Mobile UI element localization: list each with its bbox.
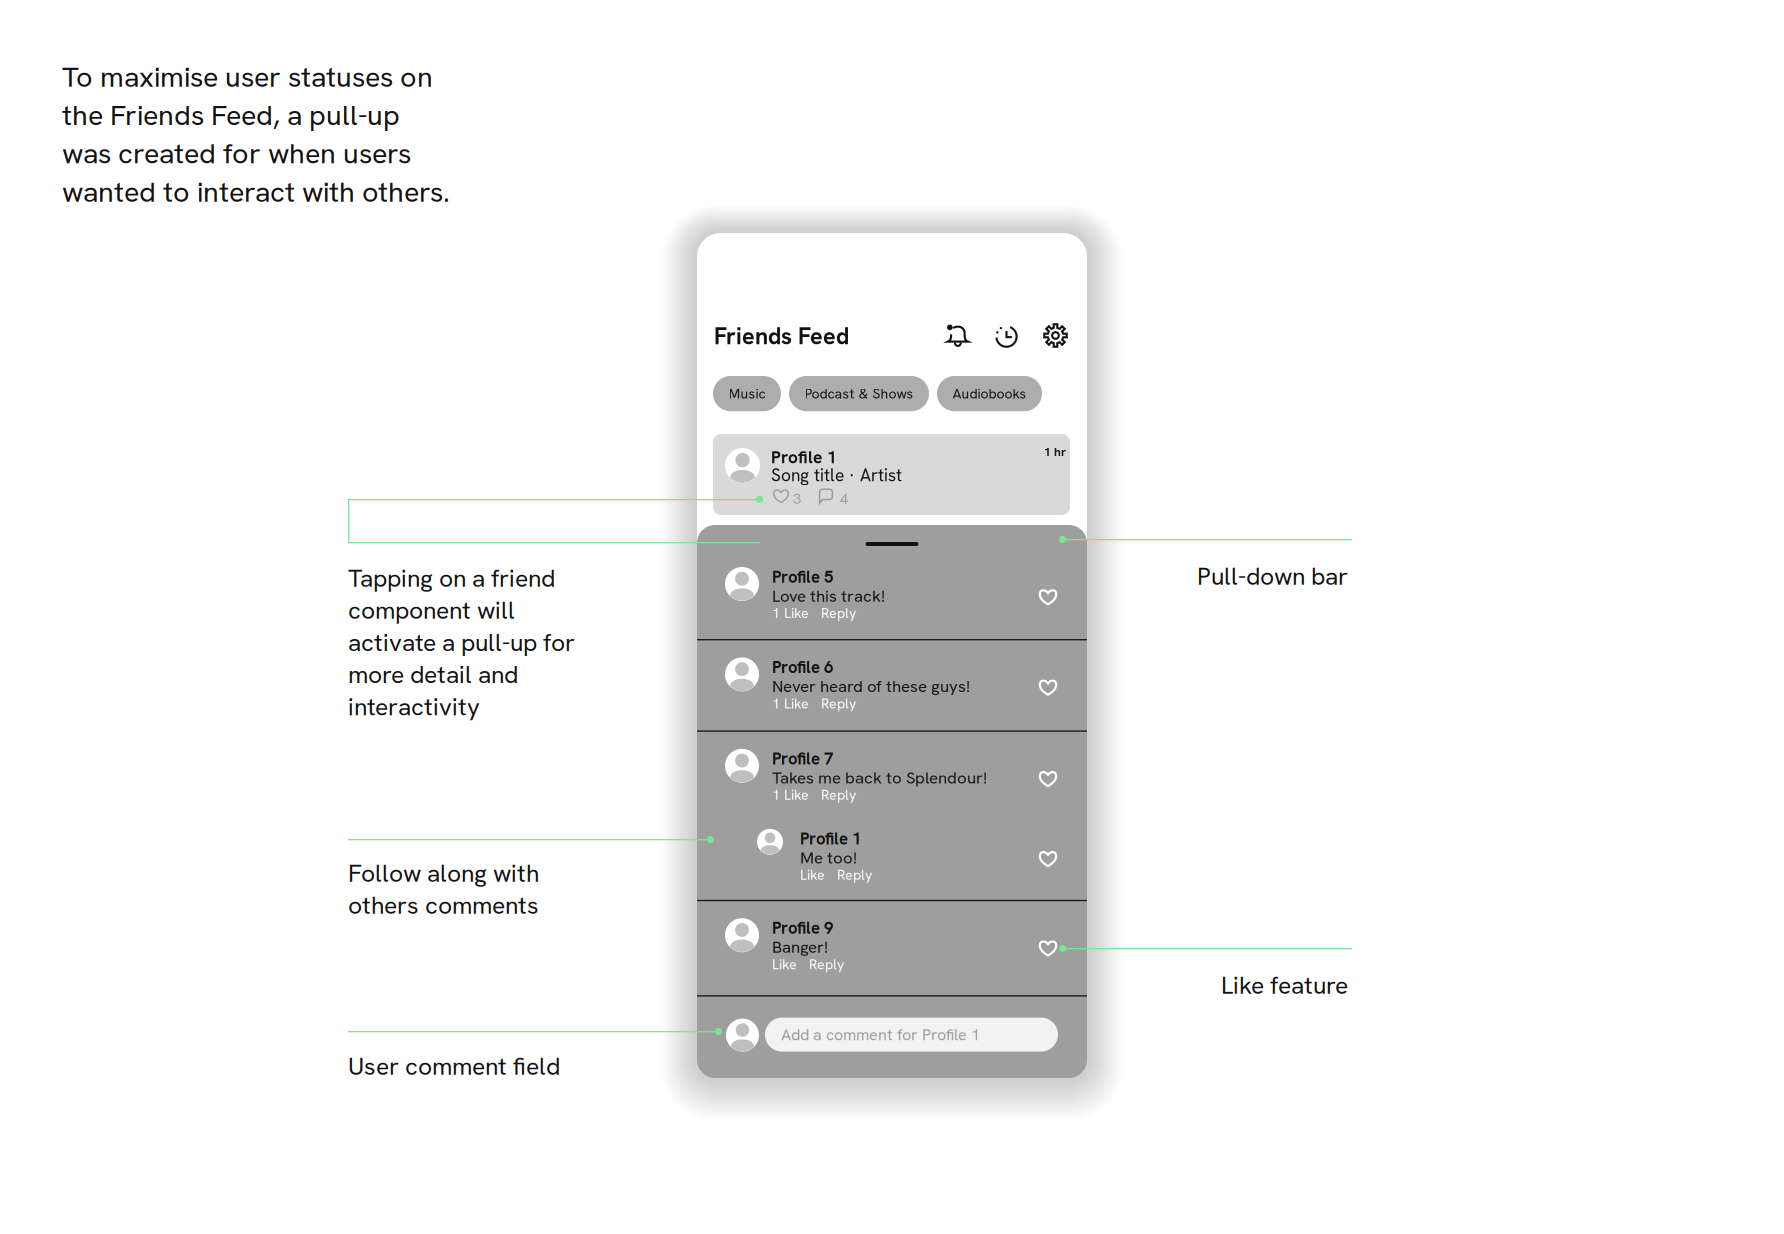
staticText: Profile 1 [800,828,861,849]
staticText: Audiobooks [952,384,1026,403]
staticText: others comments [348,889,539,921]
staticText: Banger! [772,936,828,958]
staticText: Profile 1 [771,446,837,469]
staticText: 1 Like Reply [772,604,856,622]
staticText: To maximise user statuses on [62,58,433,95]
staticText: Podcast & Shows [804,384,913,403]
button[interactable]: Settings [1043,323,1068,348]
staticText: Friends Feed [714,321,849,351]
staticText: 1 Like Reply [772,694,856,713]
button[interactable]: Profile 6 [697,640,1087,730]
staticText: Add a comment for Profile 1 [781,1024,980,1045]
button[interactable]: Profile 7 [697,732,1087,816]
staticText: Tapping on a friend [348,562,555,594]
staticText: Profile 5 [772,566,833,588]
staticText: activate a pull-up for [348,626,575,658]
staticText: 4 [840,489,848,508]
button[interactable]: Recently played [994,323,1019,348]
staticText: Pull-down bar [1197,560,1348,592]
staticText: Like Reply [800,866,872,884]
staticText: Profile 7 [772,748,833,769]
button[interactable]: Profile 9 [697,901,1087,995]
staticText: User comment field [348,1050,560,1082]
button[interactable]: Music [713,376,781,411]
staticText: 1 Like Reply [772,786,856,804]
staticText: Like Reply [772,955,844,973]
staticText: was created for when users [62,135,411,172]
button[interactable]: Audiobooks [937,376,1042,411]
button[interactable]: Notifications [944,323,969,348]
staticText: Music [728,384,765,403]
staticText: Follow along with [348,857,539,889]
staticText: more detail and [348,658,518,690]
staticText: Takes me back to Splendour! [772,767,987,788]
staticText: 1 hr [1044,444,1066,460]
staticText: 3 [793,489,801,508]
button[interactable]: Add a comment for Profile 1 [765,1018,1058,1052]
button[interactable]: Profile 5 [697,550,1087,639]
staticText: Like feature [1221,969,1348,1001]
staticText: wanted to interact with others. [62,173,450,210]
staticText: Profile 6 [772,656,833,678]
button[interactable]: Profile 1 [713,434,1070,515]
staticText: Profile 9 [772,917,833,939]
staticText: Never heard of these guys! [772,675,970,697]
staticText: Love this track! [772,585,885,607]
staticText: the Friends Feed, a pull-up [62,96,400,134]
button[interactable]: Profile 1 [697,816,1087,900]
staticText: Song title · Artist [771,464,902,487]
staticText: component will [348,594,515,626]
staticText: interactivity [348,691,480,723]
staticText: Me too! [800,847,857,868]
button[interactable]: Podcast & Shows [789,376,929,411]
